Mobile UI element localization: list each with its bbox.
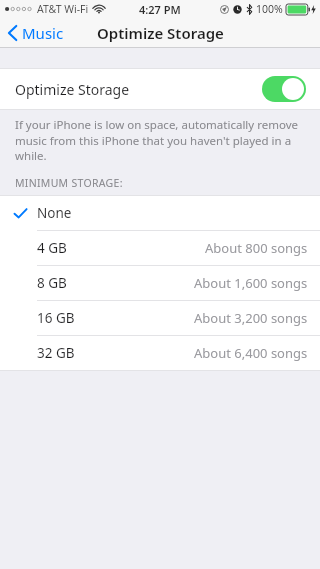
button[interactable]: None: [0, 196, 320, 230]
staticText: MINIMUM STORAGE:: [15, 176, 123, 190]
button[interactable]: 32 GB: [0, 336, 320, 370]
staticText: 32 GB: [37, 344, 75, 362]
button[interactable]: Music: [0, 19, 74, 47]
staticText: Optimize Storage: [97, 23, 224, 43]
button[interactable]: Optimize Storage toggle, on: [262, 76, 306, 102]
staticText: 16 GB: [37, 309, 75, 327]
staticText: AT&T Wi-Fi: [37, 2, 89, 16]
button[interactable]: 8 GB: [0, 266, 320, 300]
staticText: About 1,600 songs: [194, 274, 308, 292]
staticText: 4:27 PM: [139, 2, 181, 17]
staticText: About 800 songs: [205, 239, 308, 257]
staticText: Music: [22, 23, 64, 43]
button[interactable]: Optimize Storage: [0, 69, 320, 109]
staticText: None: [37, 204, 72, 222]
staticText: 8 GB: [37, 274, 67, 292]
staticText: 4 GB: [37, 239, 67, 257]
staticText: Optimize Storage: [15, 80, 130, 99]
staticText: 100%: [256, 2, 283, 16]
button[interactable]: 4 GB: [0, 231, 320, 265]
staticText: About 3,200 songs: [194, 309, 308, 327]
staticText: About 6,400 songs: [194, 344, 308, 362]
button[interactable]: 16 GB: [0, 301, 320, 335]
staticText: If your iPhone is low on space, automati…: [15, 117, 302, 163]
